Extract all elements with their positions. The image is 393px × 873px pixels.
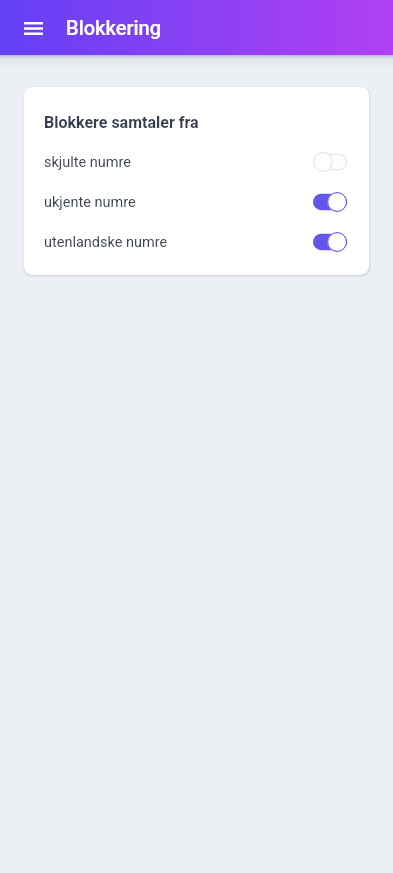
staticText: utenlandske numre (44, 234, 168, 251)
staticText: Blokkering (66, 16, 162, 39)
staticText: skjulte numre (44, 154, 132, 171)
staticText: ukjente numre (44, 194, 136, 211)
button[interactable]: utenlandske numre (24, 222, 369, 262)
button[interactable]: ukjente numre (24, 182, 369, 222)
staticText: Blokkere samtaler fra (44, 113, 199, 132)
button[interactable]: Open navigation menu (14, 9, 52, 47)
button[interactable]: skjulte numre (24, 142, 369, 182)
